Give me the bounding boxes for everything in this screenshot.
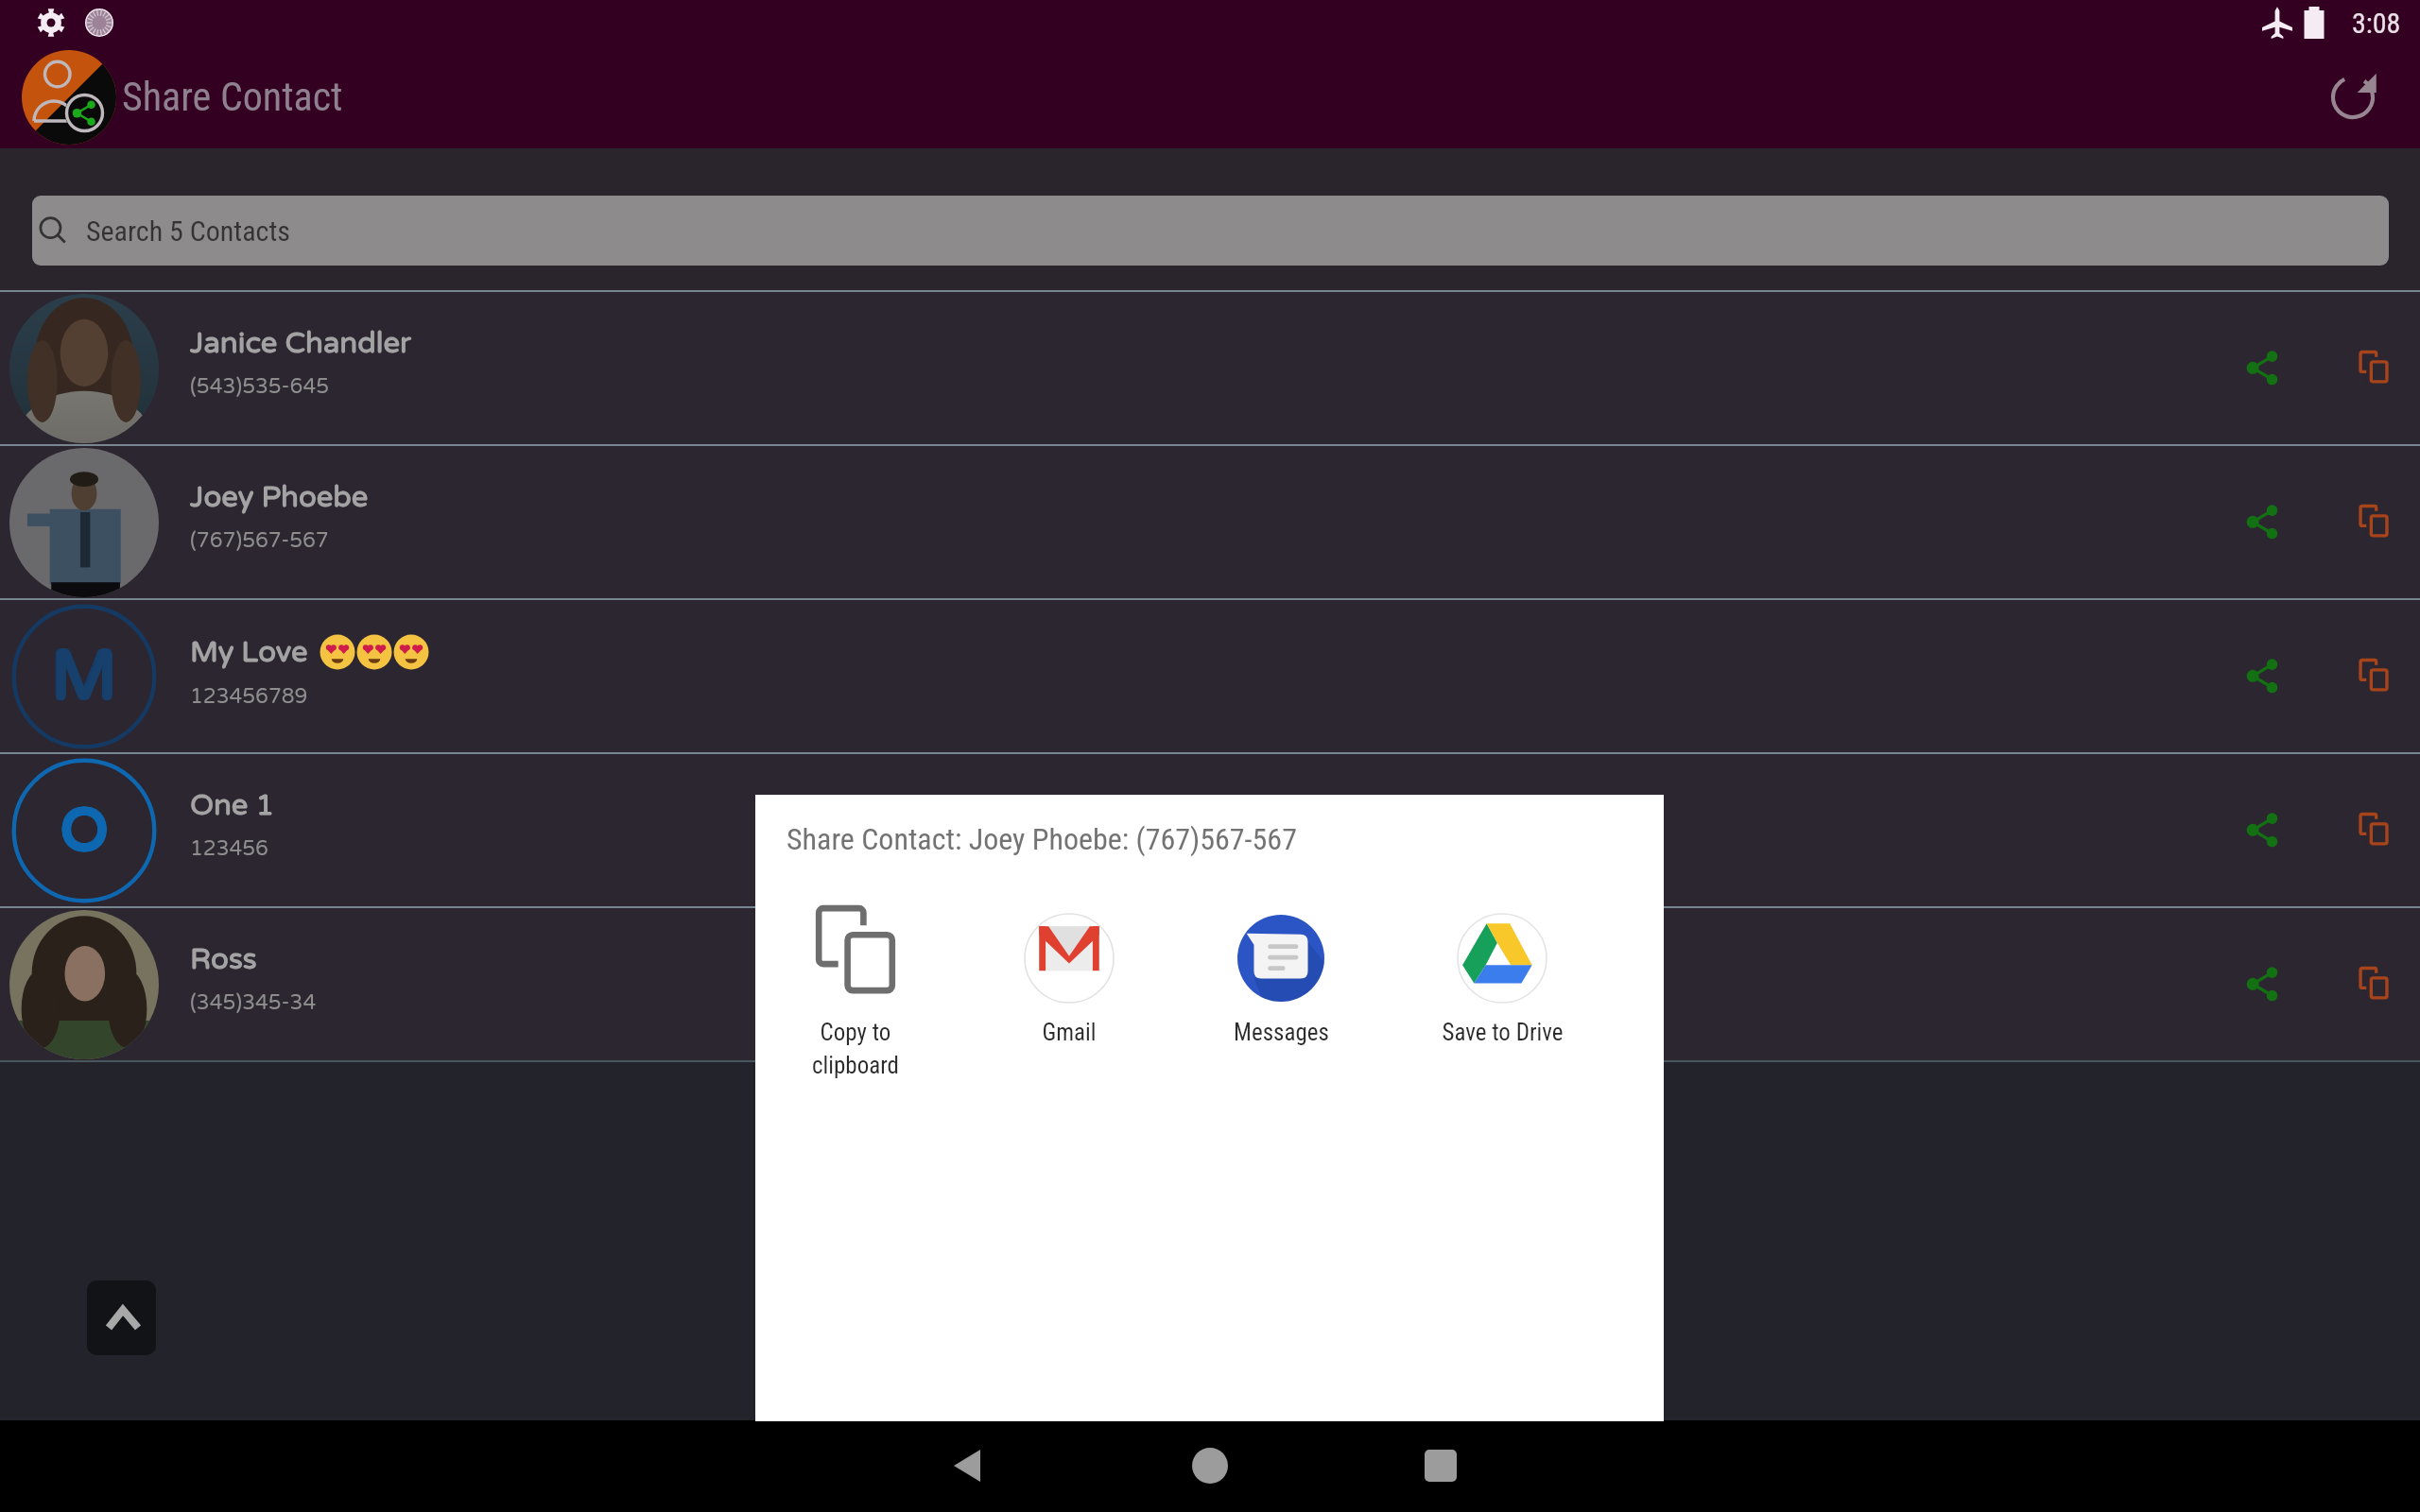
- staticText: My Love: [190, 635, 308, 670]
- staticText: (345)345-34: [190, 990, 317, 1015]
- staticText: Share Contact: [122, 74, 343, 120]
- staticText: O: [60, 797, 108, 868]
- button[interactable]: Copy to clipboard: [752, 903, 959, 1079]
- button[interactable]: M: [0, 600, 2420, 752]
- staticText: Save to Drive: [1442, 1019, 1564, 1046]
- staticText: 123456: [190, 836, 268, 861]
- staticText: M: [52, 635, 118, 717]
- button[interactable]: Refresh: [2322, 66, 2384, 129]
- staticText: M: [50, 636, 116, 718]
- staticText: Share Contact: Joey Phoebe: (767)567-567: [786, 821, 1297, 857]
- button[interactable]: Copy contact: [2331, 788, 2416, 873]
- button[interactable]: Gmail: [965, 903, 1173, 1046]
- staticText: M: [50, 637, 116, 719]
- staticText: O: [60, 795, 109, 866]
- button[interactable]: Ross: [0, 908, 2420, 1060]
- staticText: (543)535-645: [190, 374, 330, 399]
- staticText: 123456789: [190, 684, 308, 709]
- staticText: M: [51, 637, 117, 719]
- staticText: M: [52, 636, 118, 718]
- staticText: Search 5 Contacts: [86, 215, 291, 248]
- button[interactable]: Copy contact: [2331, 326, 2416, 411]
- staticText: O: [61, 797, 110, 868]
- staticText: Janice Chandler: [190, 326, 411, 361]
- button[interactable]: Joey Phoebe: [0, 446, 2420, 598]
- button[interactable]: Screen recorder: [77, 0, 122, 45]
- staticText: O: [60, 796, 109, 867]
- button[interactable]: Settings: [28, 0, 74, 45]
- staticText: (767)567-567: [190, 528, 329, 553]
- staticText: O: [60, 796, 108, 867]
- button[interactable]: Recent apps: [1395, 1420, 1486, 1511]
- staticText: O: [61, 796, 110, 867]
- button[interactable]: Search 5 Contacts: [32, 196, 2389, 266]
- button[interactable]: Back: [922, 1420, 1012, 1511]
- staticText: Messages: [1234, 1019, 1329, 1046]
- staticText: O: [60, 797, 109, 868]
- button[interactable]: O: [0, 754, 2420, 906]
- button[interactable]: Share contact: [2221, 788, 2306, 873]
- button[interactable]: Copy contact: [2331, 942, 2416, 1027]
- staticText: Copy to clipboard: [812, 1019, 899, 1079]
- button[interactable]: Home: [1165, 1420, 1255, 1511]
- button[interactable]: Messages: [1177, 903, 1385, 1046]
- staticText: O: [60, 795, 108, 866]
- staticText: O: [61, 795, 110, 866]
- button[interactable]: Janice Chandler: [0, 292, 2420, 444]
- button[interactable]: Copy contact: [2331, 634, 2416, 719]
- button[interactable]: Share contact: [2221, 326, 2306, 411]
- button[interactable]: Share contact: [2221, 634, 2306, 719]
- button[interactable]: Share contact: [2221, 942, 2306, 1027]
- button[interactable]: Copy contact: [2331, 480, 2416, 565]
- staticText: Joey Phoebe: [190, 480, 369, 515]
- staticText: One 1: [190, 788, 274, 823]
- staticText: 3:08: [2352, 7, 2401, 40]
- staticText: M: [50, 635, 116, 717]
- staticText: M: [52, 637, 118, 719]
- button[interactable]: Save to Drive: [1398, 903, 1606, 1046]
- staticText: Gmail: [1042, 1019, 1097, 1046]
- staticText: Ross: [190, 942, 257, 977]
- button[interactable]: Scroll to top: [87, 1280, 156, 1355]
- button[interactable]: Share contact: [2221, 480, 2306, 565]
- staticText: M: [51, 635, 117, 717]
- staticText: M: [51, 636, 117, 718]
